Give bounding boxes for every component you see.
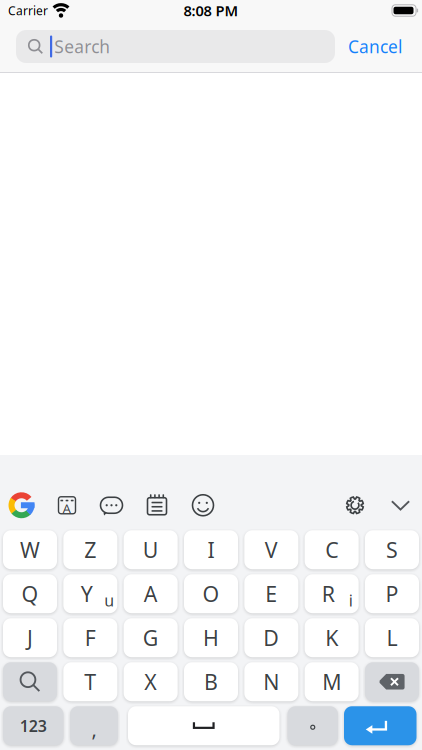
button[interactable]: E (244, 574, 298, 613)
staticText: V (265, 536, 278, 564)
button[interactable]: F (63, 618, 117, 657)
staticText: , (91, 715, 96, 742)
button[interactable]: Google search (8, 492, 34, 518)
button[interactable]: Return (344, 706, 416, 745)
button[interactable]: Z (63, 530, 117, 569)
staticText: N (263, 668, 279, 696)
staticText: X (144, 668, 157, 696)
staticText: L (386, 624, 397, 652)
button[interactable]: H (184, 618, 238, 657)
button[interactable]: Translate (34, 492, 80, 518)
button[interactable]: T (63, 662, 117, 701)
staticText: B (204, 668, 218, 696)
staticText: 8:08 PM (183, 1, 238, 20)
staticText: O (202, 580, 219, 608)
button[interactable]: O (184, 574, 238, 613)
button[interactable]: X (124, 662, 178, 701)
staticText: U (143, 536, 159, 564)
staticText: C (325, 536, 338, 564)
staticText: W (20, 536, 40, 564)
button[interactable]: Delete (365, 662, 419, 701)
button[interactable]: R (305, 574, 359, 613)
button[interactable]: K (305, 618, 359, 657)
staticText: Carrier (8, 2, 48, 18)
staticText: Y (81, 580, 93, 608)
staticText: A (144, 580, 158, 608)
button[interactable]: , (70, 706, 118, 745)
staticText: F (85, 624, 96, 652)
staticText: i (349, 590, 353, 611)
staticText: Q (21, 580, 38, 608)
staticText: Z (84, 536, 96, 564)
button[interactable]: Emoji (170, 492, 216, 518)
staticText: u (104, 590, 114, 611)
button[interactable]: A (124, 574, 178, 613)
staticText: K (325, 624, 338, 652)
staticText: J (27, 624, 33, 652)
button[interactable]: I (184, 530, 238, 569)
button[interactable]: Cancel (335, 30, 415, 63)
staticText: Search (54, 35, 110, 58)
button[interactable]: V (244, 530, 298, 569)
staticText: H (203, 624, 219, 652)
button[interactable]: Search (3, 662, 57, 701)
staticText: M (322, 668, 341, 696)
staticText: Cancel (348, 35, 402, 58)
staticText: D (263, 624, 279, 652)
button[interactable]: C (305, 530, 359, 569)
button[interactable]: N (244, 662, 298, 701)
button[interactable]: Q (3, 574, 57, 613)
button[interactable]: Space (128, 706, 279, 745)
button[interactable]: Y (63, 574, 117, 613)
button[interactable]: Dismiss keyboard (368, 500, 410, 510)
button[interactable]: U (124, 530, 178, 569)
button[interactable]: W (3, 530, 57, 569)
staticText: E (265, 580, 277, 608)
staticText: P (385, 580, 398, 608)
button[interactable]: Period (287, 706, 338, 745)
button[interactable]: L (365, 618, 419, 657)
staticText: A (62, 500, 71, 517)
staticText: G (143, 624, 159, 652)
button[interactable]: Keyboard settings (342, 492, 368, 518)
button[interactable]: Search (16, 30, 335, 63)
button[interactable]: Clipboard (124, 492, 170, 518)
button[interactable]: G (124, 618, 178, 657)
staticText: 123 (20, 715, 47, 736)
button[interactable]: B (184, 662, 238, 701)
staticText: T (84, 668, 96, 696)
staticText: S (386, 536, 398, 564)
staticText: R (322, 580, 335, 608)
button[interactable]: M (305, 662, 359, 701)
button[interactable]: P (365, 574, 419, 613)
button[interactable]: Stickers (80, 492, 124, 518)
staticText: I (207, 536, 214, 564)
button[interactable]: D (244, 618, 298, 657)
button[interactable]: 123 (3, 706, 63, 745)
button[interactable]: S (365, 530, 419, 569)
button[interactable]: J (3, 618, 57, 657)
